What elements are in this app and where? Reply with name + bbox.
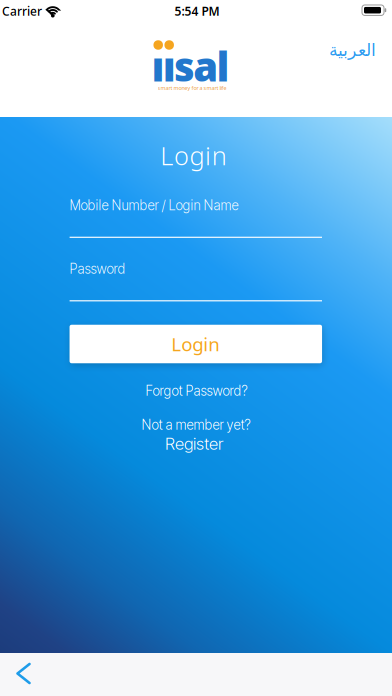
- staticText: Register: [165, 434, 223, 454]
- button[interactable]: Forgot Password?: [145, 383, 247, 399]
- staticText: العربية: [328, 40, 375, 60]
- staticText: Forgot Password?: [145, 383, 247, 399]
- staticText: 5:54 PM: [174, 3, 219, 19]
- button[interactable]: Mobile Number / Login Name: [70, 197, 322, 238]
- staticText: smart money for a smart life: [157, 84, 226, 92]
- staticText: Password: [70, 261, 126, 277]
- button[interactable]: العربية: [328, 40, 375, 60]
- staticText: Not a member yet?: [141, 417, 250, 433]
- button[interactable]: Login: [70, 325, 322, 363]
- staticText: ıısal: [152, 39, 229, 92]
- staticText: Mobile Number / Login Name: [70, 197, 239, 213]
- button[interactable]: Back: [17, 664, 29, 683]
- button[interactable]: Password: [70, 261, 322, 301]
- staticText: Carrier: [2, 3, 42, 19]
- staticText: Login: [171, 332, 220, 356]
- staticText: Login: [160, 139, 227, 172]
- button[interactable]: Register: [165, 434, 223, 454]
